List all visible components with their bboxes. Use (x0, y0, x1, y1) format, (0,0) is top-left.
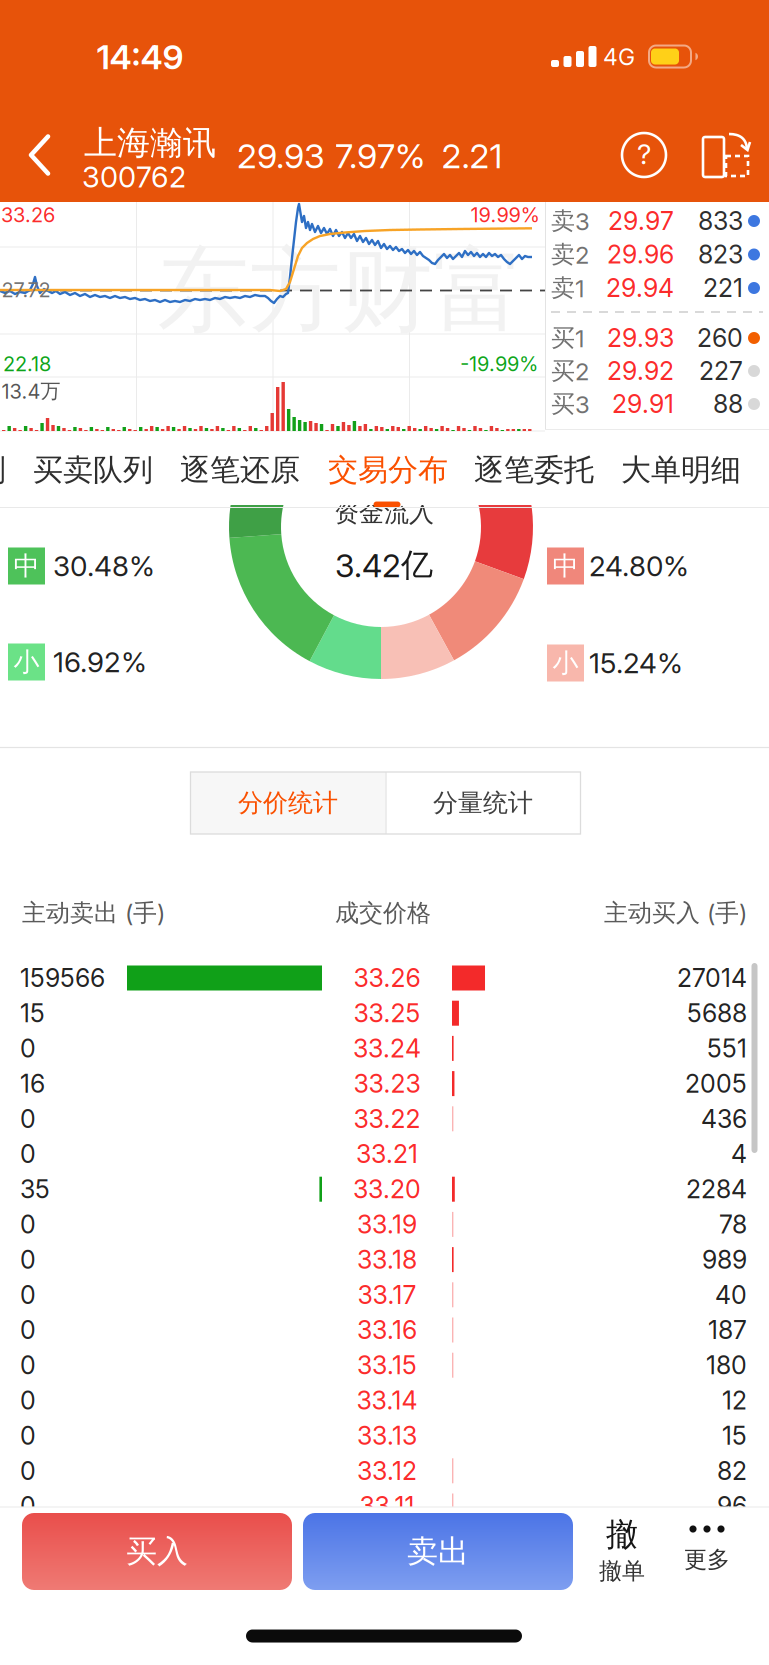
staticText: 989 (702, 1244, 747, 1275)
staticText: 0 (20, 1491, 36, 1521)
staticText: 买1 (551, 323, 585, 353)
staticText: 30.48% (53, 549, 155, 583)
staticText: 东方财富 (157, 233, 525, 349)
staticText: 29.96 (607, 239, 674, 270)
staticText: 33.26 (353, 963, 420, 993)
staticText: 27014 (677, 963, 747, 993)
staticText: 96 (717, 1491, 747, 1521)
staticText: 0 (20, 1209, 36, 1239)
button[interactable]: 交易分布 (314, 443, 462, 497)
staticText: 2284 (686, 1174, 747, 1204)
staticText: 33.23 (353, 1068, 420, 1099)
staticText: 0 (20, 1420, 36, 1451)
staticText: 卖2 (551, 239, 589, 270)
staticText: 0 (20, 1139, 36, 1169)
button[interactable]: 卖出 (303, 1513, 573, 1590)
staticText: 227 (699, 356, 743, 386)
staticText: 卖出 (407, 1532, 469, 1571)
staticText: 主动卖出 (手) (22, 898, 165, 928)
staticText: 29.94 (606, 273, 674, 303)
staticText: 33.22 (353, 1104, 420, 1134)
staticText: 15.24% (589, 646, 683, 680)
staticText: 29.92 (607, 356, 674, 386)
staticText: 436 (701, 1104, 747, 1134)
staticText: 成交价格 (335, 898, 431, 928)
staticText: 资金流入 (334, 497, 434, 529)
button[interactable]: 分价统计 (190, 772, 385, 834)
staticText: 16.92% (53, 645, 147, 679)
staticText: 33.24 (353, 1033, 421, 1063)
staticText: 33.16 (357, 1315, 417, 1345)
button[interactable]: 买卖队列 (19, 443, 167, 497)
staticText: 撤 (606, 1514, 638, 1555)
staticText: 187 (708, 1315, 747, 1345)
button[interactable]: 买入 (22, 1513, 292, 1590)
staticText: 300762 (82, 159, 186, 195)
button[interactable]: Help (622, 133, 666, 177)
staticText: 33.26 (1, 203, 55, 227)
staticText: 33.25 (353, 998, 420, 1028)
staticText: 29.91 (612, 389, 674, 419)
button[interactable]: 更多 (667, 1513, 747, 1585)
staticText: 中 (552, 550, 578, 582)
staticText: 33.14 (356, 1385, 417, 1415)
staticText: 33.13 (357, 1420, 417, 1451)
staticText: 逐笔还原 (180, 451, 300, 489)
staticText: 823 (698, 239, 743, 270)
staticText: 卖3 (551, 206, 590, 236)
staticText: -19.99% (460, 352, 538, 376)
staticText: 12 (722, 1385, 747, 1415)
button[interactable]: 逐笔委托 (460, 443, 608, 497)
staticText: 33.17 (357, 1280, 416, 1310)
staticText: 33.15 (357, 1350, 417, 1380)
staticText: 2005 (685, 1068, 747, 1099)
staticText: 13.4万 (1, 378, 60, 404)
button[interactable]: 大单明细 (607, 443, 755, 497)
staticText: 买入 (126, 1532, 188, 1571)
staticText: 列 (0, 451, 6, 489)
staticText: 78 (719, 1209, 747, 1239)
staticText: 0 (20, 1280, 36, 1310)
staticText: 大单明细 (621, 451, 741, 489)
staticText: 82 (717, 1456, 747, 1486)
staticText: 0 (20, 1385, 36, 1415)
staticText: 19.99% (470, 203, 539, 227)
staticText: 159566 (20, 963, 105, 993)
button[interactable]: Landscape chart (699, 129, 755, 179)
staticText: 3.42亿 (335, 545, 433, 585)
staticText: 4 (731, 1139, 747, 1169)
staticText: 逐笔委托 (474, 451, 594, 489)
staticText: 交易分布 (328, 451, 448, 489)
button[interactable]: 分量统计 (385, 772, 580, 834)
staticText: 撤单 (599, 1557, 645, 1586)
staticText: 29.93 (237, 135, 325, 176)
staticText: 更多 (684, 1545, 730, 1574)
staticText: 0 (20, 1315, 36, 1345)
staticText: ? (637, 137, 651, 171)
staticText: 中 (13, 550, 39, 582)
staticText: 551 (707, 1033, 747, 1063)
button[interactable]: 撤 (582, 1510, 662, 1590)
staticText: 0 (20, 1244, 36, 1275)
staticText: 33.21 (356, 1139, 418, 1169)
staticText: 33.18 (357, 1244, 417, 1275)
staticText: 33.11 (359, 1491, 414, 1521)
staticText: 40 (715, 1280, 747, 1310)
staticText: 0 (20, 1033, 36, 1063)
staticText: 7.97% (335, 135, 425, 176)
button[interactable]: Back (10, 126, 66, 182)
button[interactable]: 逐笔还原 (166, 443, 314, 497)
staticText: 260 (697, 323, 743, 353)
staticText: 0 (20, 1456, 36, 1486)
staticText: 14:49 (96, 36, 183, 77)
staticText: 22.18 (3, 352, 51, 376)
staticText: 4G (603, 43, 635, 71)
staticText: 买3 (551, 389, 590, 419)
staticText: 180 (706, 1350, 747, 1380)
staticText: 24.80% (589, 549, 689, 583)
staticText: 分价统计 (238, 787, 338, 819)
staticText: 15 (722, 1420, 747, 1451)
staticText: 上海瀚讯 (84, 122, 216, 164)
staticText: 35 (20, 1174, 50, 1204)
staticText: 5688 (687, 998, 747, 1028)
